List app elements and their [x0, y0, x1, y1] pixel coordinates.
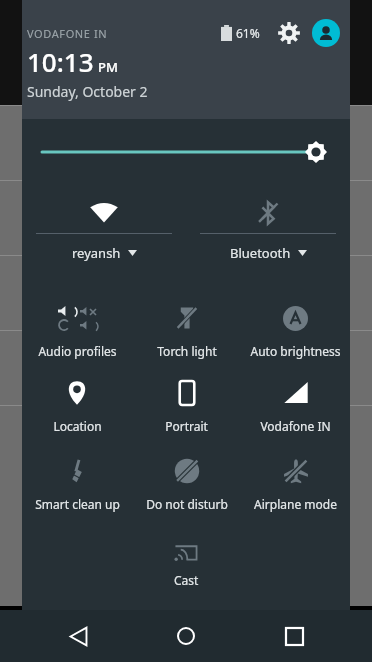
button[interactable]: User profile	[312, 19, 340, 47]
staticText: VODAFONE IN	[27, 26, 108, 41]
staticText: Bluetooth	[230, 244, 291, 262]
button[interactable]: Settings	[274, 18, 304, 48]
staticText: Vodafone IN	[260, 418, 331, 434]
staticText: Do not disturb	[146, 496, 228, 512]
button[interactable]: Do not disturb	[132, 444, 241, 522]
button[interactable]: Location	[22, 366, 132, 444]
staticText: Location	[53, 418, 102, 434]
button[interactable]: Torch light	[132, 291, 241, 366]
button[interactable]: Vodafone IN	[241, 366, 350, 444]
staticText: reyansh	[72, 244, 121, 262]
button[interactable]: Home	[156, 610, 216, 662]
staticText: Cast	[174, 572, 199, 588]
staticText: Auto brightness	[250, 343, 341, 359]
button[interactable]: Brightness	[22, 129, 350, 175]
staticText: 10:13	[27, 44, 94, 79]
staticText: Airplane mode	[254, 496, 337, 512]
button[interactable]: reyansh	[36, 187, 172, 277]
button[interactable]: Audio profiles	[22, 291, 132, 366]
button[interactable]: Smart clean up	[22, 444, 132, 522]
staticText: PM	[98, 58, 118, 76]
staticText: 61%	[236, 25, 260, 41]
staticText: Portrait	[165, 418, 208, 434]
staticText: Audio profiles	[38, 343, 117, 359]
staticText: Smart clean up	[35, 496, 120, 512]
button[interactable]: Recents	[264, 610, 324, 662]
button[interactable]: Back	[48, 610, 108, 662]
button[interactable]: Airplane mode	[241, 444, 350, 522]
button[interactable]: Bluetooth	[200, 187, 336, 277]
staticText: Torch light	[157, 343, 217, 359]
button[interactable]: Portrait	[132, 366, 241, 444]
staticText: Sunday, October 2	[27, 82, 148, 101]
button[interactable]: Auto brightness	[241, 291, 350, 366]
button[interactable]: Cast	[22, 530, 350, 588]
